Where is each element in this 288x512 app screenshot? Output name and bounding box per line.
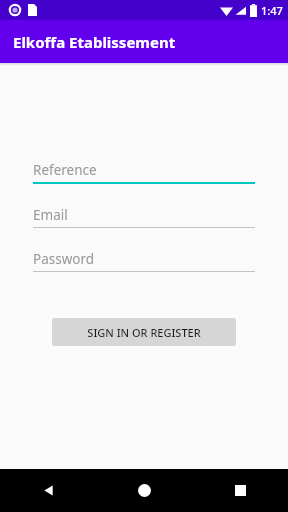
button[interactable]: Back bbox=[0, 469, 96, 512]
button[interactable]: Password bbox=[33, 248, 255, 272]
button[interactable]: SIGN IN OR REGISTER bbox=[52, 318, 236, 346]
button[interactable]: Recent apps bbox=[192, 469, 288, 512]
staticText: 1:47 bbox=[261, 3, 283, 18]
button[interactable]: Home bbox=[96, 469, 192, 512]
staticText: Reference bbox=[33, 161, 97, 179]
staticText: SIGN IN OR REGISTER bbox=[87, 325, 201, 340]
staticText: Email bbox=[33, 206, 68, 224]
staticText: Password bbox=[33, 250, 95, 268]
button[interactable]: Email bbox=[33, 204, 255, 228]
button[interactable]: Reference bbox=[33, 159, 255, 184]
staticText: Elkoffa Etablissement bbox=[13, 32, 176, 52]
